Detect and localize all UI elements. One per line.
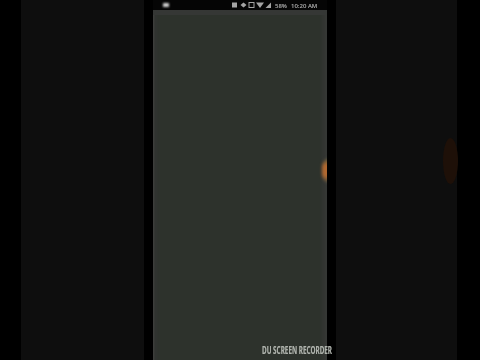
button[interactable]: Screen recorder bubble xyxy=(322,156,327,185)
staticText: 10:20 AM xyxy=(291,2,318,10)
staticText: DU SCREEN RECORDER xyxy=(262,343,332,357)
staticText: 58% xyxy=(275,2,287,10)
